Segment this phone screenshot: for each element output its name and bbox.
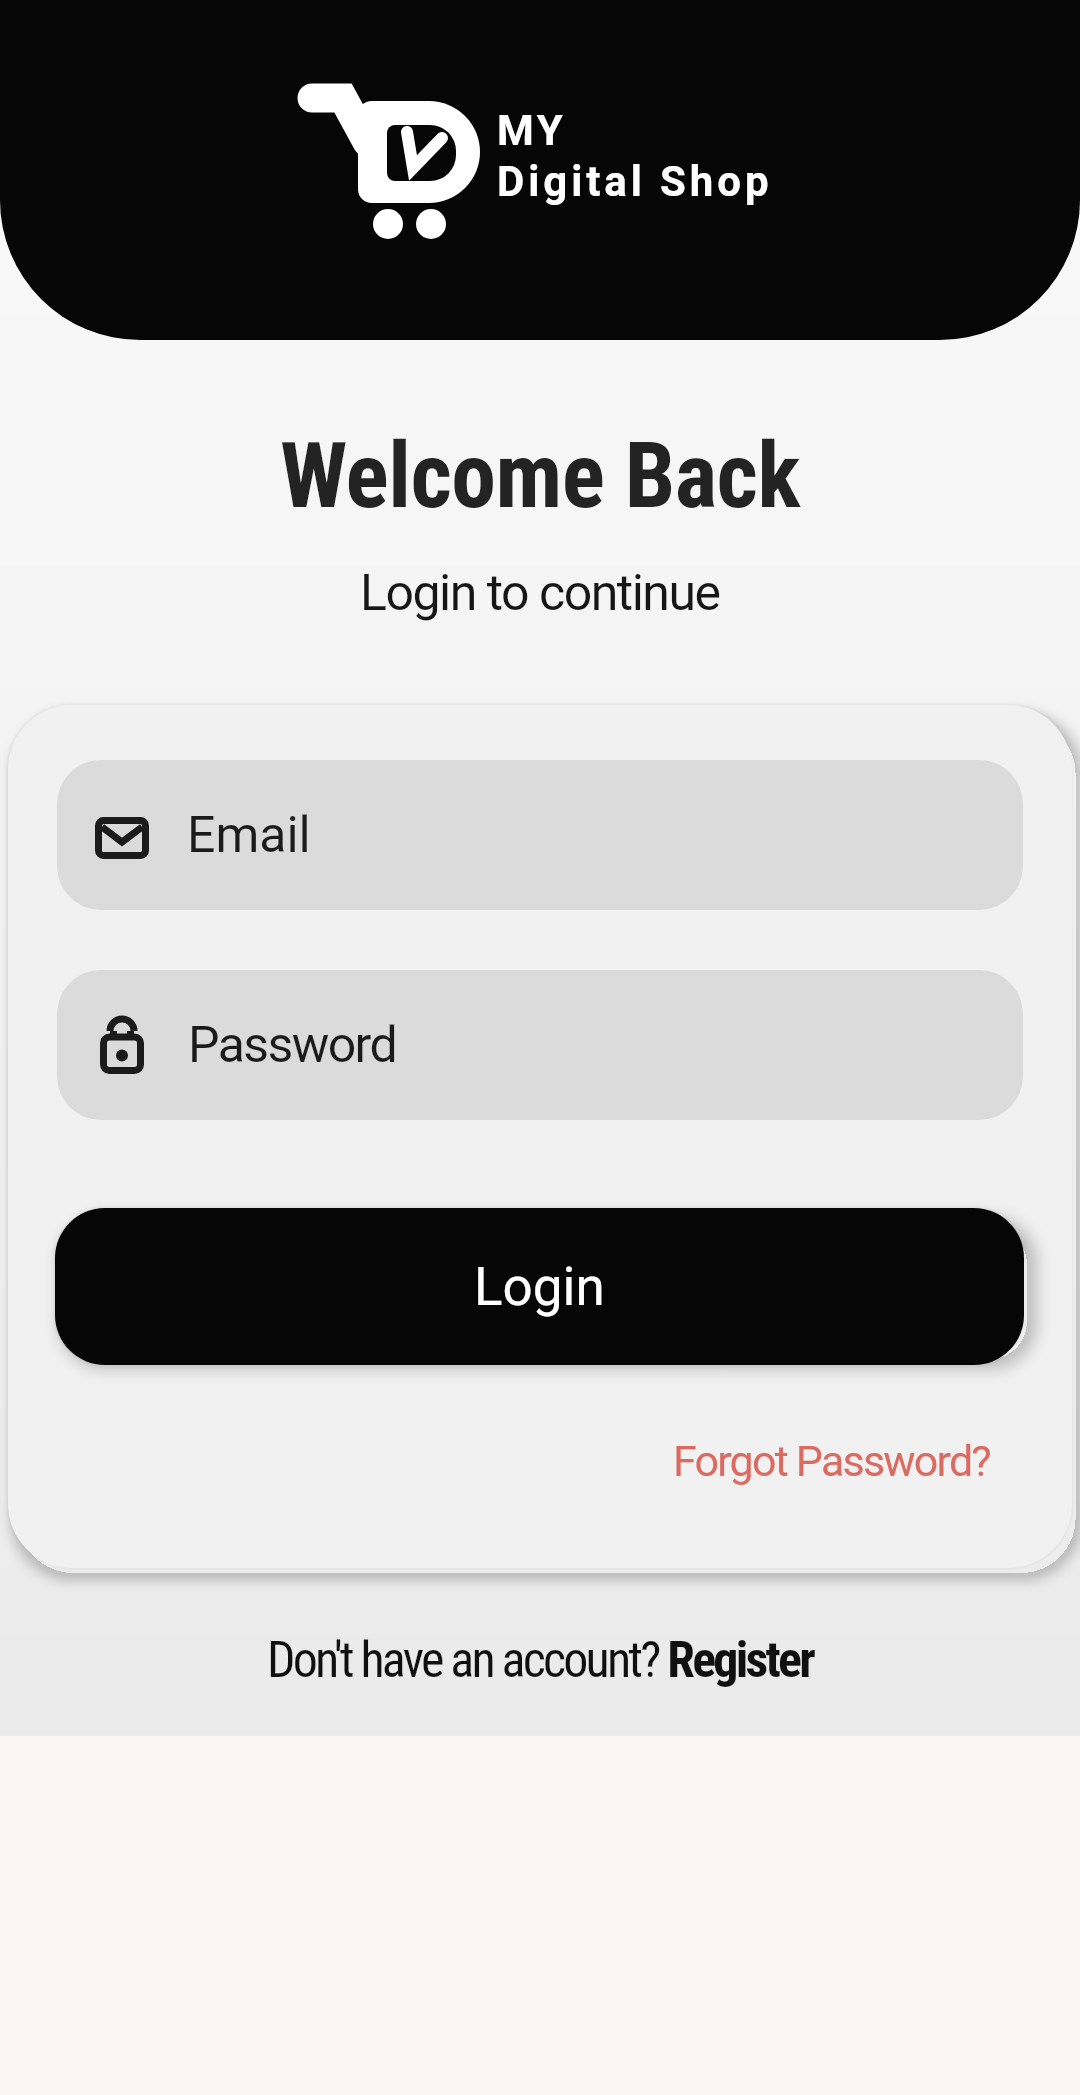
staticText: Digital Shop	[497, 157, 773, 206]
button[interactable]: Forgot Password?	[673, 1436, 990, 1486]
button[interactable]: Password	[57, 970, 1023, 1120]
button[interactable]: Login	[55, 1208, 1024, 1365]
staticText: MY	[497, 106, 567, 155]
staticText: Login to continue	[360, 564, 720, 623]
staticText: Login	[474, 1256, 605, 1318]
button[interactable]: Don't have an account? Register	[267, 1631, 813, 1690]
staticText: Email	[187, 806, 311, 865]
staticText: Password	[188, 1016, 397, 1075]
button[interactable]: Email	[57, 760, 1023, 910]
staticText: Welcome Back	[280, 424, 801, 529]
